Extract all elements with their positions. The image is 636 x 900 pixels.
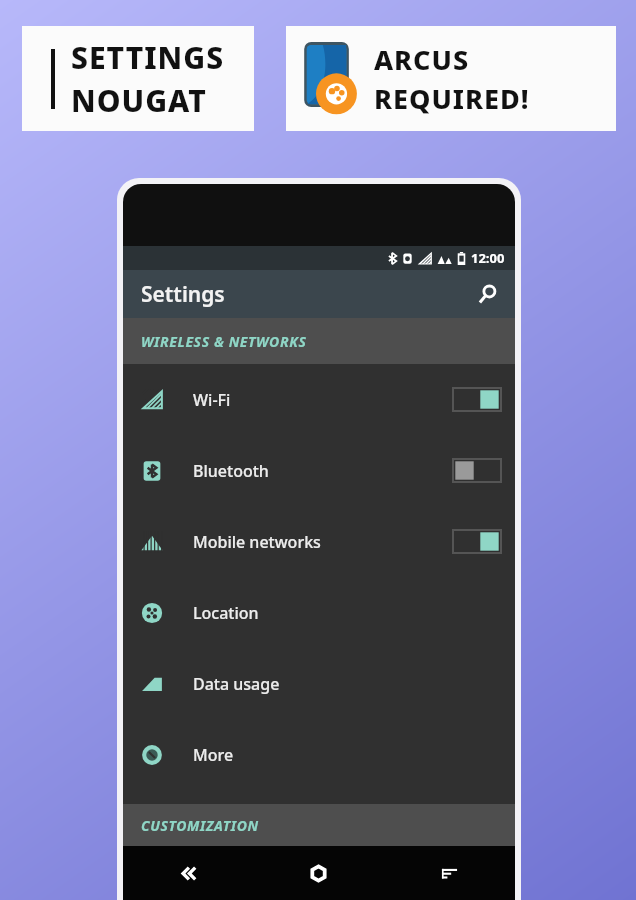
button[interactable]: On [453, 530, 501, 553]
button[interactable]: Location [123, 577, 515, 648]
button[interactable]: Mobile networks [123, 506, 515, 577]
button[interactable]: Off [453, 459, 501, 482]
staticText: Bluetooth [193, 460, 269, 482]
staticText: 12:00 [471, 249, 505, 267]
staticText: REQUIRED! [374, 80, 530, 117]
staticText: Data usage [193, 673, 280, 695]
button[interactable]: More [123, 719, 515, 790]
staticText: SETTINGS [71, 37, 225, 78]
button[interactable]: Wi-Fi [123, 364, 515, 435]
button[interactable]: Recents [384, 846, 515, 900]
staticText: More [193, 744, 234, 766]
button[interactable]: Search [467, 274, 507, 314]
button[interactable]: Back [123, 846, 253, 900]
button[interactable]: Data usage [123, 648, 515, 719]
staticText: Settings [141, 280, 225, 309]
staticText: NOUGAT [71, 80, 207, 121]
staticText: Location [193, 602, 259, 624]
staticText: Wi-Fi [193, 389, 231, 411]
button[interactable]: Home [253, 846, 384, 900]
staticText: WIRELESS & NETWORKS [141, 332, 307, 351]
staticText: Mobile networks [193, 531, 321, 553]
button[interactable]: Bluetooth [123, 435, 515, 506]
button[interactable]: On [453, 388, 501, 411]
staticText: CUSTOMIZATION [141, 816, 259, 835]
staticText: ARCUS [374, 41, 470, 78]
